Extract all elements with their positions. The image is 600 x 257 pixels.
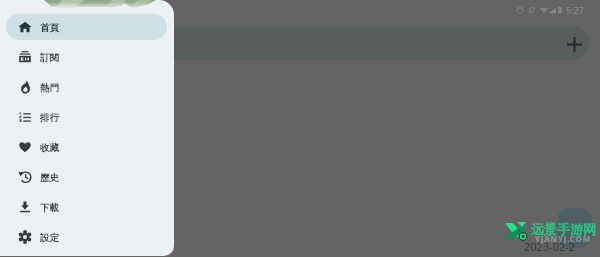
staticText: 訂閱 (40, 52, 59, 64)
staticText: 首頁 (40, 22, 59, 34)
button[interactable]: 訂閱 (6, 44, 167, 70)
button[interactable]: 首頁 (6, 14, 167, 40)
button[interactable]: 排行 (6, 104, 167, 130)
staticText: 歷史 (40, 172, 59, 184)
button[interactable]: 熱門 (6, 74, 167, 100)
button[interactable]: 收藏 (6, 134, 167, 160)
button[interactable]: Compose (557, 208, 592, 248)
staticText: 設定 (40, 232, 59, 244)
button[interactable]: Search (100, 26, 589, 60)
staticText: 远景手游网 (531, 221, 596, 237)
button[interactable]: Add (566, 36, 583, 53)
button[interactable]: 下載 (6, 194, 167, 220)
staticText: 排行 (40, 112, 59, 124)
staticText: 2023-02-2 (524, 239, 576, 254)
staticText: 收藏 (40, 142, 59, 154)
button[interactable]: 設定 (6, 224, 167, 250)
staticText: 熱門 (40, 82, 59, 94)
staticText: 下載 (40, 202, 59, 214)
staticText: YJANYJ.COM (535, 233, 592, 244)
staticText: 5:27 (566, 4, 584, 16)
button[interactable]: 歷史 (6, 164, 167, 190)
